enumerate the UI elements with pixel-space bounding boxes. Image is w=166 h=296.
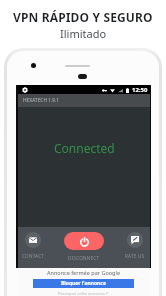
staticText: Annonce fermée par Google (47, 269, 120, 276)
staticText: 12:50 (132, 86, 148, 94)
staticText: Connected (54, 140, 115, 156)
staticText: RATE US (125, 253, 145, 259)
staticText: Bloquer l'annonce (61, 280, 106, 287)
staticText: HEXATECH 1.9.1 (23, 97, 60, 104)
button[interactable]: Bloquer l'annonce (33, 279, 134, 288)
staticText: DISCONNECT (68, 255, 100, 261)
staticText: Pourquoi cette annonce ? (58, 291, 108, 296)
staticText: CONTACT (22, 253, 45, 259)
staticText: VPN RÁPIDO Y SEGURO (13, 9, 153, 25)
button[interactable]: Contact (16, 232, 50, 259)
button[interactable]: Rate us (118, 232, 152, 259)
staticText: Ilimitado (60, 26, 107, 41)
button[interactable]: DISCONNECT (64, 232, 104, 261)
